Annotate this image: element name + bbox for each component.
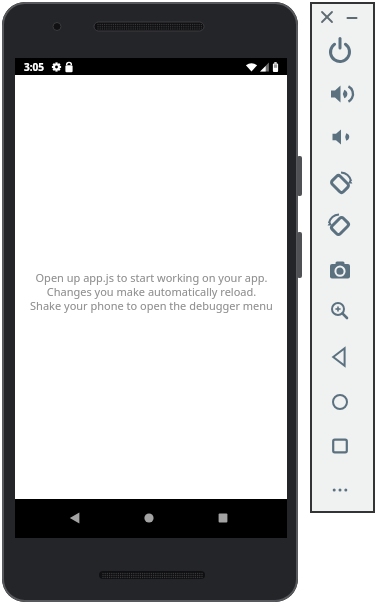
button[interactable] — [322, 208, 358, 244]
button[interactable] — [322, 32, 358, 68]
button[interactable] — [322, 428, 358, 464]
button[interactable] — [209, 504, 237, 532]
button[interactable] — [322, 293, 358, 329]
staticText: 3:05 — [24, 60, 44, 74]
button[interactable] — [322, 252, 358, 288]
button[interactable] — [61, 504, 89, 532]
button[interactable] — [322, 166, 358, 202]
staticText: Open up app.js to start working on your … — [30, 270, 273, 313]
button[interactable] — [322, 119, 358, 155]
button[interactable] — [339, 4, 365, 30]
button[interactable] — [314, 4, 340, 30]
button[interactable] — [322, 339, 358, 375]
button[interactable] — [322, 76, 358, 112]
button[interactable] — [322, 384, 358, 420]
button[interactable] — [135, 504, 163, 532]
button[interactable] — [322, 472, 358, 508]
